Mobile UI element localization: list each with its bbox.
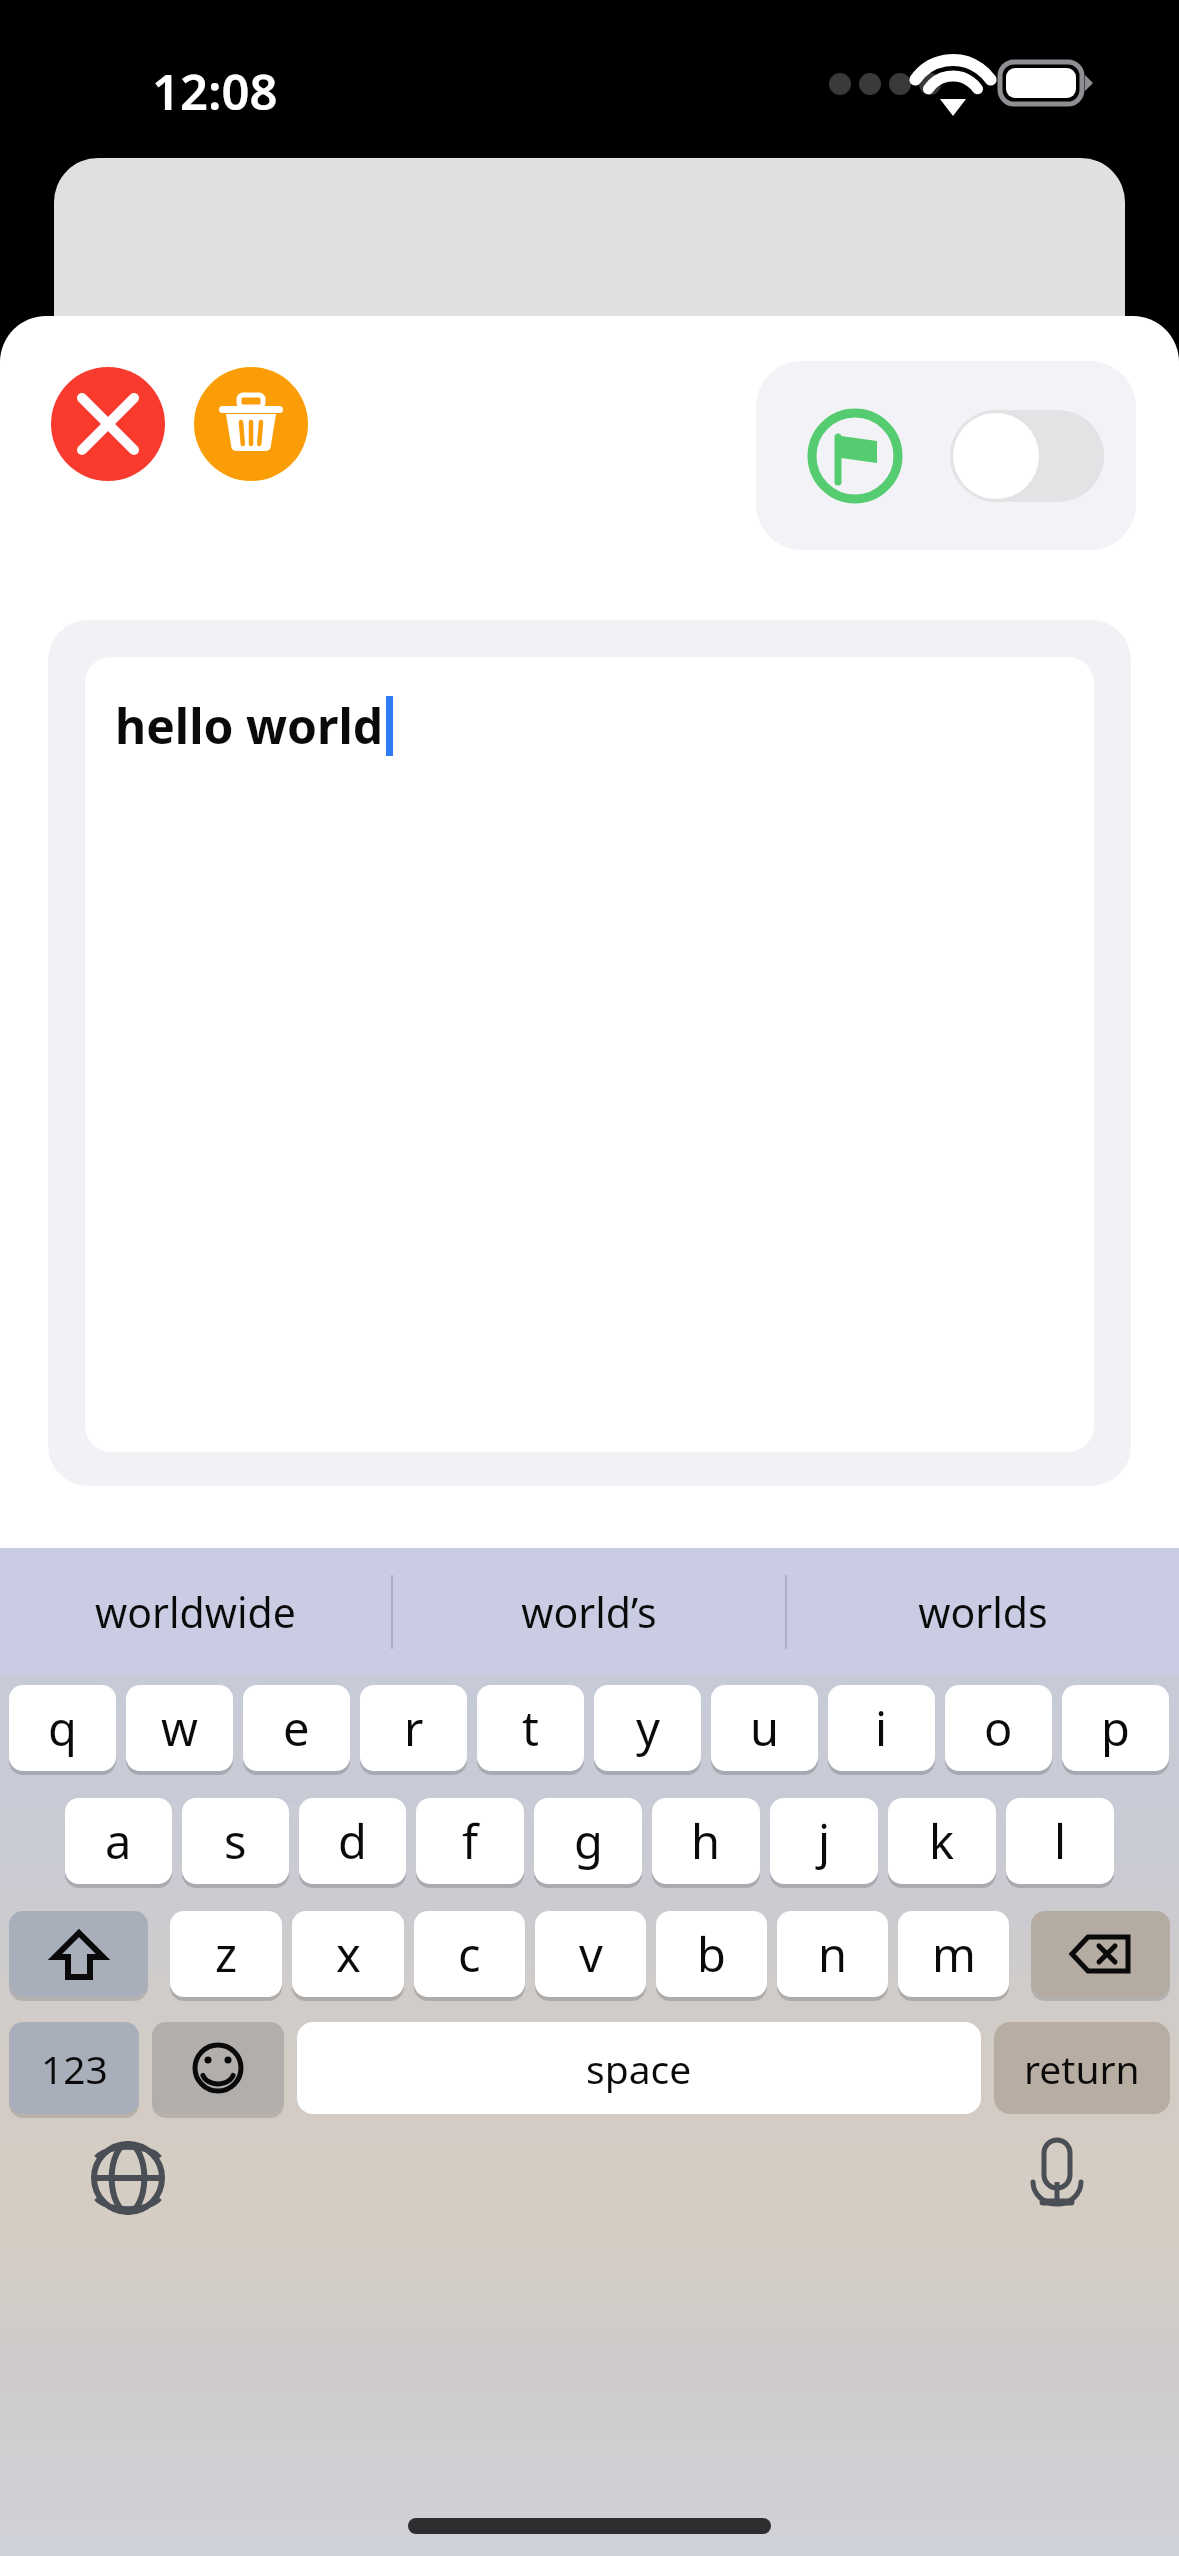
staticText: y [636, 1696, 660, 1760]
staticText: d [338, 1809, 367, 1873]
button[interactable]: y [594, 1685, 701, 1771]
staticText: c [458, 1922, 481, 1986]
button[interactable]: p [1062, 1685, 1169, 1771]
button[interactable]: f [416, 1798, 524, 1884]
button[interactable]: Shift [9, 1911, 148, 1997]
button[interactable]: w [126, 1685, 233, 1771]
button[interactable]: Flag [756, 361, 1136, 550]
staticText: z [215, 1922, 238, 1986]
button[interactable]: h [652, 1798, 760, 1884]
button[interactable]: Dictate [1011, 2126, 1103, 2218]
button[interactable]: o [945, 1685, 1052, 1771]
button[interactable]: c [414, 1911, 525, 1997]
button[interactable]: l [1006, 1798, 1114, 1884]
staticText: world’s [521, 1584, 657, 1640]
button[interactable]: s [182, 1798, 289, 1884]
button[interactable]: n [777, 1911, 888, 1997]
button[interactable]: e [243, 1685, 350, 1771]
staticText: q [48, 1696, 77, 1760]
staticText: t [522, 1696, 539, 1760]
staticText: a [105, 1809, 132, 1873]
staticText: return [1024, 2042, 1140, 2095]
staticText: h [691, 1809, 721, 1873]
staticText: worlds [918, 1584, 1048, 1640]
staticText: b [697, 1922, 726, 1986]
other: Flag [807, 408, 903, 504]
staticText: j [818, 1809, 831, 1873]
staticText: 123 [41, 2042, 108, 2095]
staticText: w [161, 1696, 198, 1760]
button[interactable]: Backspace [1031, 1911, 1170, 1997]
button[interactable]: g [534, 1798, 642, 1884]
staticText: n [818, 1922, 848, 1986]
button[interactable]: z [170, 1911, 282, 1997]
button[interactable]: Emoji [152, 2022, 284, 2114]
button[interactable]: a [65, 1798, 172, 1884]
staticText: e [283, 1696, 310, 1760]
button[interactable]: world’s [393, 1548, 785, 1676]
staticText: r [404, 1696, 424, 1760]
button[interactable]: space [297, 2022, 981, 2114]
staticText: x [336, 1922, 361, 1986]
staticText: u [750, 1696, 780, 1760]
staticText: k [929, 1809, 955, 1873]
staticText: m [932, 1922, 976, 1986]
button[interactable]: v [535, 1911, 646, 1997]
button[interactable]: k [888, 1798, 996, 1884]
staticText: space [586, 2042, 692, 2095]
button[interactable]: j [770, 1798, 878, 1884]
staticText: v [579, 1922, 603, 1986]
button[interactable]: d [299, 1798, 406, 1884]
button[interactable]: m [898, 1911, 1009, 1997]
button[interactable]: Delete [194, 367, 308, 481]
staticText: p [1101, 1696, 1130, 1760]
button[interactable]: Numbers [9, 2022, 139, 2114]
button[interactable]: q [9, 1685, 116, 1771]
staticText: g [574, 1809, 603, 1873]
staticText: hello world [115, 693, 384, 758]
button[interactable]: worlds [787, 1548, 1179, 1676]
staticText: f [462, 1809, 479, 1873]
button[interactable]: u [711, 1685, 818, 1771]
button[interactable]: i [828, 1685, 935, 1771]
button[interactable]: b [656, 1911, 767, 1997]
button[interactable]: Close [51, 367, 165, 481]
button[interactable]: t [477, 1685, 584, 1771]
staticText: s [224, 1809, 247, 1873]
button[interactable]: r [360, 1685, 467, 1771]
button[interactable]: return [994, 2022, 1170, 2114]
button[interactable]: hello world [48, 620, 1131, 1486]
button[interactable] [950, 410, 1104, 502]
staticText: i [875, 1696, 888, 1760]
staticText: worldwide [95, 1584, 296, 1640]
staticText: o [984, 1696, 1013, 1760]
button[interactable]: Change keyboard [82, 2132, 174, 2224]
staticText: 12:08 [152, 58, 278, 125]
button[interactable]: worldwide [0, 1548, 391, 1676]
button[interactable]: x [292, 1911, 404, 1997]
staticText: l [1054, 1809, 1067, 1873]
